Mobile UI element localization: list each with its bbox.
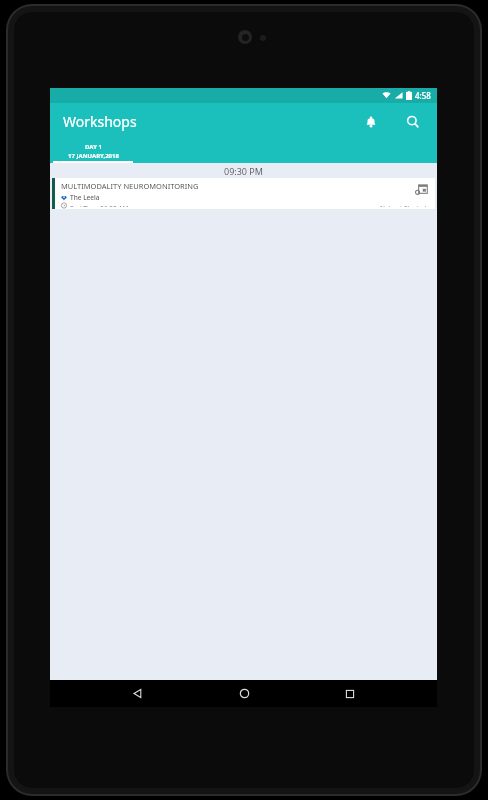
staticText: The Leela	[70, 193, 100, 202]
staticText: End Time 06:30 AM	[70, 204, 129, 207]
staticText: 4:58	[415, 90, 431, 101]
button[interactable]: Back	[117, 680, 157, 707]
staticText: Not yet Started	[380, 204, 427, 207]
button[interactable]: DAY 1	[53, 140, 133, 163]
staticText: Workshops	[63, 112, 137, 131]
staticText: 09:30 PM	[224, 165, 263, 177]
button[interactable]: Notifications	[357, 108, 385, 136]
button[interactable]: Home	[224, 680, 264, 707]
staticText: MULTIMODALITY NEUROMONITORING	[61, 181, 199, 191]
button[interactable]: Add to calendar	[413, 180, 430, 197]
button[interactable]: MULTIMODALITY NEUROMONITORING	[52, 178, 435, 209]
staticText: 17 JANUARY,2018	[68, 152, 119, 160]
button[interactable]: Search	[399, 108, 427, 136]
button[interactable]: Recent apps	[330, 680, 370, 707]
staticText: DAY 1	[85, 143, 102, 151]
